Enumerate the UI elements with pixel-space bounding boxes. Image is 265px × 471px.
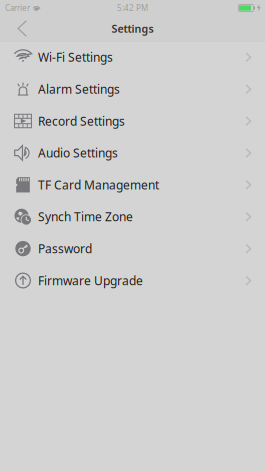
staticText: Firmware Upgrade [38, 272, 143, 288]
button[interactable]: Audio Settings [0, 137, 265, 169]
button[interactable]: Record Settings [0, 105, 265, 137]
staticText: Password [38, 241, 92, 256]
staticText: Record Settings [38, 113, 125, 129]
staticText: Audio Settings [38, 145, 118, 161]
staticText: TF Card Management [38, 177, 159, 193]
staticText: 5:42 PM [117, 3, 148, 13]
button[interactable]: Alarm Settings [0, 73, 265, 105]
staticText: Synch Time Zone [38, 209, 133, 225]
button[interactable]: Back [0, 16, 40, 41]
staticText: Wi-Fi Settings [38, 49, 113, 65]
button[interactable]: Wi-Fi Settings [0, 41, 265, 73]
staticText: Settings [111, 21, 153, 36]
button[interactable]: Password [0, 233, 265, 264]
staticText: Alarm Settings [38, 81, 120, 97]
staticText: Carrier [5, 3, 30, 13]
button[interactable]: Synch Time Zone [0, 201, 265, 232]
button[interactable]: TF Card Management [0, 169, 265, 200]
button[interactable]: Firmware Upgrade [0, 265, 265, 296]
